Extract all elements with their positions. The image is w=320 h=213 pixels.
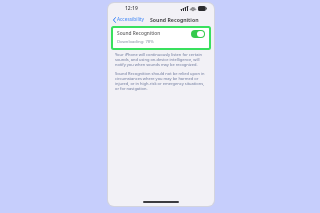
staticText: Downloading: 78%	[117, 39, 154, 45]
staticText: 12:19	[125, 5, 138, 12]
staticText: Your iPhone will continuously listen for…	[115, 52, 207, 67]
button[interactable]: Back to Accessibility	[108, 15, 146, 24]
staticText: Sound Recognition	[150, 16, 199, 23]
button[interactable]: Sound Recognition	[113, 28, 209, 39]
button[interactable]: Sound Recognition, on	[191, 30, 205, 38]
staticText: Sound Recognition	[117, 30, 161, 37]
staticText: Accessibility	[117, 16, 145, 23]
staticText: Sound Recognition should not be relied u…	[115, 71, 207, 91]
